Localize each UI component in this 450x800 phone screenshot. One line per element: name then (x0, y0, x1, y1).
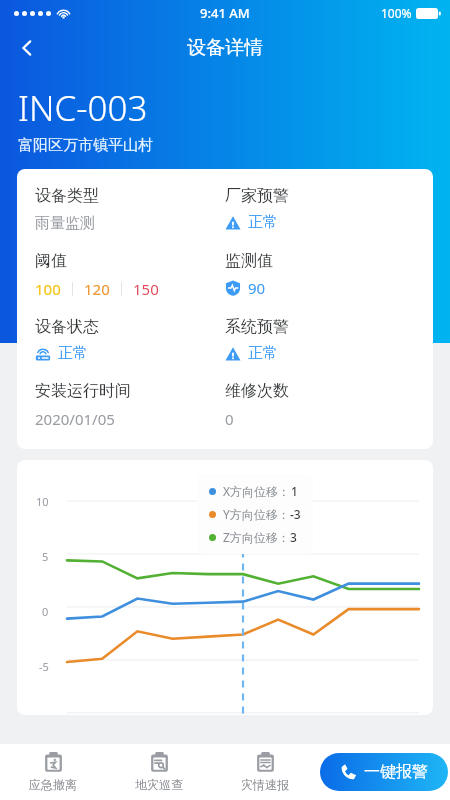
staticText: 厂家预警 (225, 186, 289, 206)
button[interactable]: 地灾巡查 (106, 744, 212, 800)
staticText: 0 (42, 604, 49, 619)
staticText: 0 (225, 409, 234, 429)
staticText: 地灾巡查 (135, 777, 183, 792)
staticText: 正常 (58, 344, 88, 363)
staticText: INC-003 (18, 84, 148, 132)
staticText: 设备详情 (187, 36, 263, 60)
staticText: 9:41 AM (200, 4, 250, 22)
staticText: Z方向位移： (223, 529, 290, 545)
staticText: 富阳区万市镇平山村 (18, 136, 153, 155)
staticText: 设备状态 (35, 317, 99, 337)
staticText: 100 (35, 279, 61, 299)
staticText: -5 (39, 659, 49, 674)
button[interactable]: Back (6, 27, 48, 69)
staticText: 90 (248, 278, 266, 298)
staticText: -3 (290, 506, 301, 522)
staticText: 150 (133, 279, 159, 299)
staticText: 灾情速报 (241, 777, 289, 792)
staticText: 维修次数 (225, 381, 289, 401)
staticText: 120 (84, 279, 110, 299)
staticText: 正常 (248, 344, 278, 363)
staticText: 正常 (248, 213, 278, 232)
staticText: 5 (42, 549, 49, 564)
staticText: 应急撤离 (29, 777, 77, 792)
staticText: X方向位移： (223, 483, 291, 499)
button[interactable]: 灾情速报 (212, 744, 318, 800)
staticText: 2020/01/05 (35, 409, 115, 429)
staticText: 1 (291, 483, 298, 499)
staticText: Y方向位移： (223, 506, 290, 522)
staticText: 雨量监测 (35, 214, 95, 233)
button[interactable]: 应急撤离 (0, 744, 106, 800)
staticText: 安装运行时间 (35, 381, 131, 401)
staticText: 一键报警 (364, 762, 428, 782)
staticText: 100% (381, 5, 412, 21)
staticText: 监测值 (225, 251, 273, 271)
staticText: 阈值 (35, 251, 67, 271)
staticText: 设备类型 (35, 186, 99, 206)
staticText: 10 (36, 494, 49, 509)
button[interactable]: 一键报警 (320, 753, 448, 791)
staticText: 3 (290, 529, 297, 545)
staticText: 系统预警 (225, 317, 289, 337)
